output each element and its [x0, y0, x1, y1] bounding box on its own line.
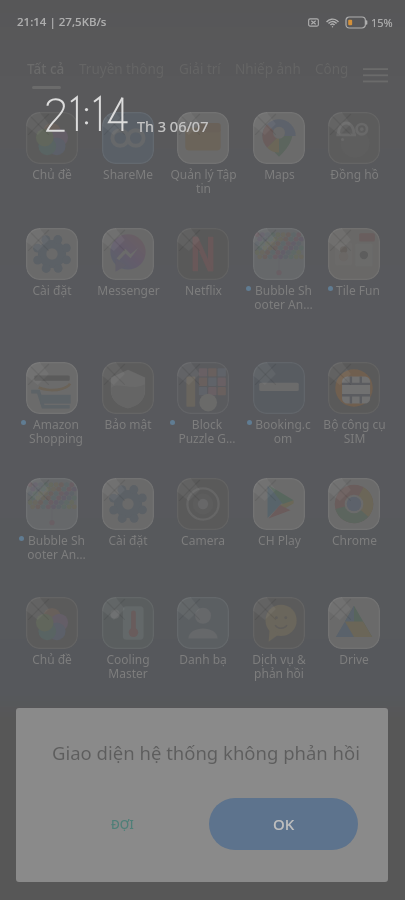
staticText: Chủ đề — [32, 166, 72, 182]
button[interactable]: Maps — [241, 112, 317, 182]
button[interactable]: Booking.c om — [241, 362, 317, 447]
staticText: Bubble Sh ooter An… — [254, 282, 313, 313]
button[interactable]: Công — [315, 60, 349, 89]
button[interactable]: ShareMe — [90, 112, 166, 182]
button[interactable]: Tất cả — [27, 60, 65, 89]
staticText: Drive — [339, 651, 369, 667]
staticText: ĐỢI — [111, 816, 134, 832]
staticText: Truyền thông — [79, 60, 165, 78]
staticText: Giải trí — [179, 60, 221, 78]
button[interactable]: Cài đặt — [90, 478, 166, 548]
staticText: Block Puzzle G… — [178, 416, 236, 447]
staticText: Bộ công cụ SIM — [323, 416, 386, 447]
staticText: Công — [315, 60, 349, 78]
staticText: Giao diện hệ thống không phản hồi — [52, 740, 361, 765]
staticText: Dịch vụ & phản hồi — [252, 651, 306, 682]
staticText: Tile Fun — [336, 282, 380, 298]
staticText: Chrome — [332, 532, 377, 548]
staticText: Camera — [181, 532, 225, 548]
staticText: Cooling Master — [106, 651, 150, 682]
staticText: Th 3 06/07 — [137, 116, 209, 136]
staticText: Messenger — [97, 282, 160, 298]
button[interactable]: Chrome — [316, 478, 392, 548]
button[interactable]: Quản lý Tập tin — [165, 112, 241, 197]
staticText: Nhiếp ảnh — [235, 60, 301, 78]
staticText: CH Play — [258, 532, 301, 548]
button[interactable]: Danh bạ — [165, 597, 241, 667]
button[interactable]: Chủ đề — [14, 597, 90, 667]
button[interactable]: Chủ đề — [14, 112, 90, 182]
staticText: Danh bạ — [179, 651, 227, 667]
staticText: Maps — [264, 166, 295, 182]
button[interactable]: ĐỢI — [101, 806, 144, 842]
button[interactable]: Drive — [316, 597, 392, 667]
button[interactable]: Bảo mật — [90, 362, 166, 432]
staticText: Bubble Sh ooter An… — [27, 532, 86, 563]
button[interactable]: Block Puzzle G… — [165, 362, 241, 447]
button[interactable]: Tile Fun — [316, 228, 392, 298]
button[interactable]: Bubble Sh ooter An… — [14, 478, 90, 563]
staticText: Đồng hồ — [330, 166, 379, 182]
button[interactable]: Nhiếp ảnh — [235, 60, 301, 89]
staticText: ShareMe — [103, 166, 153, 182]
staticText: 15% — [371, 15, 393, 30]
button[interactable]: CH Play — [241, 478, 317, 548]
button[interactable]: Bộ công cụ SIM — [316, 362, 392, 447]
staticText: Netflix — [185, 282, 222, 298]
button[interactable]: Messenger — [90, 228, 166, 298]
staticText: Cài đặt — [32, 282, 72, 298]
button[interactable]: Menu — [358, 58, 392, 92]
staticText: Bảo mật — [104, 416, 152, 432]
staticText: Chủ đề — [32, 651, 72, 667]
staticText: Booking.c om — [255, 416, 311, 447]
button[interactable]: Bubble Sh ooter An… — [241, 228, 317, 313]
staticText: Amazon Shopping — [29, 416, 83, 447]
staticText: OK — [273, 814, 295, 834]
staticText: Quản lý Tập tin — [170, 166, 237, 197]
button[interactable]: Cooling Master — [90, 597, 166, 682]
staticText: Tất cả — [27, 60, 65, 78]
button[interactable]: Camera — [165, 478, 241, 548]
button[interactable]: Đồng hồ — [316, 112, 392, 182]
button[interactable]: Amazon Shopping — [14, 362, 90, 447]
staticText: 21:14 | 27,5KB/s — [17, 14, 107, 30]
staticText: Cài đặt — [108, 532, 148, 548]
button[interactable]: Dịch vụ & phản hồi — [241, 597, 317, 682]
button[interactable]: Cài đặt — [14, 228, 90, 298]
button[interactable]: OK — [209, 798, 358, 850]
button[interactable]: Netflix — [165, 228, 241, 298]
